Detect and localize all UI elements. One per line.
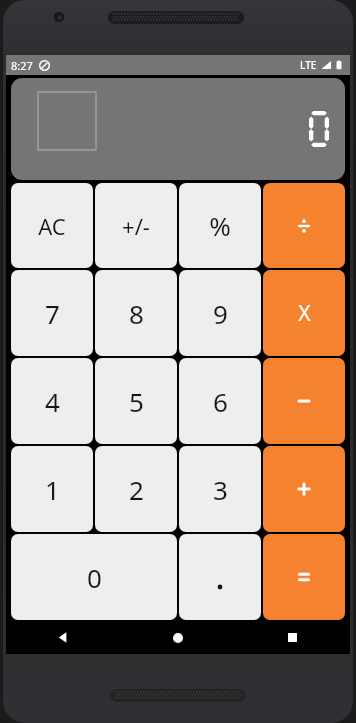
button[interactable]: 3 <box>179 446 261 532</box>
button[interactable] <box>263 534 345 620</box>
button[interactable]: 1 <box>11 446 93 532</box>
button[interactable] <box>263 183 345 268</box>
button[interactable]: +/- <box>95 183 177 268</box>
button[interactable]: Recent apps <box>235 621 350 654</box>
staticText: AC <box>38 211 66 241</box>
staticText: 1 <box>45 472 60 507</box>
staticText: 6 <box>213 384 228 419</box>
button[interactable] <box>179 534 261 620</box>
button[interactable]: Back <box>6 621 120 654</box>
staticText: 7 <box>45 296 60 331</box>
staticText: LTE <box>300 58 317 72</box>
staticText: 3 <box>213 472 228 507</box>
staticText: 4 <box>45 384 60 419</box>
staticText: 8:27 <box>11 58 33 73</box>
button[interactable] <box>263 358 345 444</box>
staticText: 5 <box>129 384 144 419</box>
button[interactable]: 0 <box>11 534 177 620</box>
staticText: +/- <box>122 211 150 241</box>
button[interactable]: 9 <box>179 270 261 356</box>
button[interactable]: 7 <box>11 270 93 356</box>
button[interactable]: 2 <box>95 446 177 532</box>
button[interactable] <box>263 446 345 532</box>
button[interactable]: 5 <box>95 358 177 444</box>
button[interactable]: Home <box>120 621 235 654</box>
button[interactable]: 6 <box>179 358 261 444</box>
staticText: % <box>209 208 231 243</box>
staticText: 8 <box>129 296 144 331</box>
button[interactable]: % <box>179 183 261 268</box>
staticText: 9 <box>213 296 228 331</box>
staticText: 0 <box>87 560 102 595</box>
button[interactable]: AC <box>11 183 93 268</box>
button[interactable]: 4 <box>11 358 93 444</box>
button[interactable]: X <box>263 270 345 356</box>
button[interactable]: 8 <box>95 270 177 356</box>
staticText: 2 <box>129 472 144 507</box>
staticText: X <box>298 299 311 328</box>
